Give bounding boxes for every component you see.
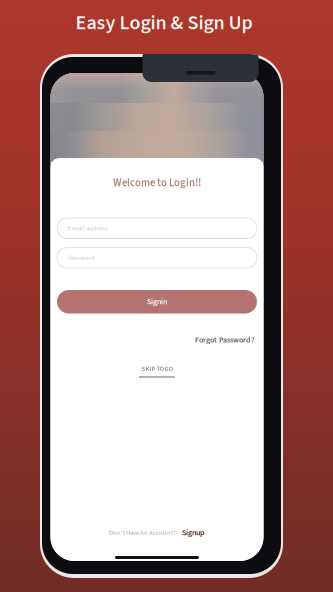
staticText: Welcome to Login!! — [113, 175, 201, 191]
staticText: Email address — [68, 223, 108, 233]
button[interactable]: Signup — [182, 527, 205, 538]
staticText: Signup — [182, 527, 205, 538]
staticText: Signin — [147, 296, 167, 307]
staticText: Easy Login & Sign Up — [75, 9, 252, 37]
button[interactable]: SKIP TO GO — [50, 364, 263, 377]
staticText: Forgot Password? — [195, 334, 255, 346]
button[interactable]: Signin — [57, 290, 257, 313]
staticText: Password — [68, 253, 95, 262]
button[interactable]: Forgot Password? — [57, 335, 255, 345]
staticText: Don't Have An Account? — [109, 528, 176, 537]
staticText: SKIP TO GO — [141, 364, 172, 373]
